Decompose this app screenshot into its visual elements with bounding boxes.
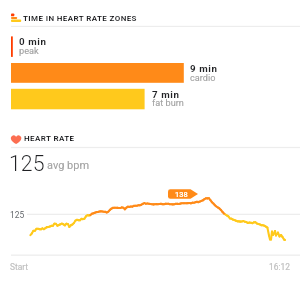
staticText: cardio [190, 72, 216, 83]
staticText: 125 [10, 210, 25, 220]
staticText: HEART RATE [24, 134, 75, 143]
staticText: 16:12 [269, 262, 290, 272]
button[interactable]: Heart rate [0, 130, 300, 146]
staticText: 0 min [19, 36, 47, 47]
staticText: 9 min [190, 63, 218, 74]
staticText: fat burn [152, 97, 184, 108]
staticText: 125 [9, 151, 45, 176]
staticText: avg bpm [47, 159, 90, 172]
staticText: peak [19, 45, 39, 56]
button[interactable]: Time in heart rate zones [0, 11, 300, 24]
button[interactable]: Heart rate chart [0, 148, 300, 288]
staticText: Start [10, 262, 29, 272]
staticText: 138 [175, 190, 188, 199]
staticText: 7 min [152, 89, 180, 100]
staticText: TIME IN HEART RATE ZONES [23, 14, 137, 23]
